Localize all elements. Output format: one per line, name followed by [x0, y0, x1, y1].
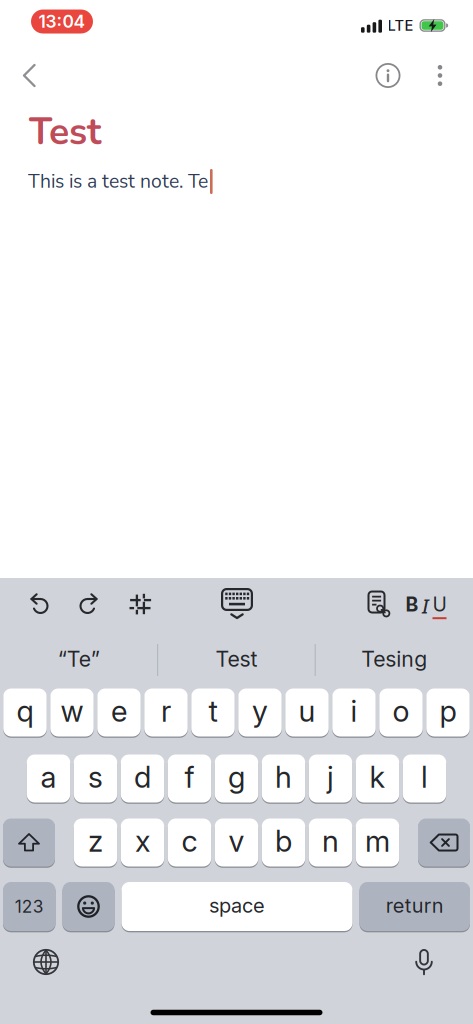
staticText: LTE — [387, 17, 413, 34]
staticText: U — [432, 593, 446, 616]
staticText: f — [184, 759, 194, 795]
button[interactable]: n — [309, 817, 352, 867]
button[interactable]: Tesing — [319, 637, 469, 681]
button[interactable]: Redo — [72, 587, 106, 621]
staticText: l — [421, 759, 428, 795]
staticText: d — [134, 759, 151, 795]
button[interactable]: p — [426, 687, 470, 737]
staticText: u — [298, 693, 315, 729]
staticText: h — [275, 759, 292, 795]
staticText: 123 — [15, 896, 44, 917]
button[interactable]: w — [50, 687, 94, 737]
staticText: o — [392, 693, 409, 729]
button[interactable]: s — [74, 753, 117, 803]
staticText: 13:04 — [38, 11, 85, 32]
button[interactable]: Recording indicator, 13:04 — [31, 9, 93, 33]
button[interactable]: i — [332, 687, 376, 737]
button[interactable]: d — [121, 753, 164, 803]
staticText: m — [365, 823, 390, 859]
staticText: b — [275, 823, 292, 859]
button[interactable]: f — [168, 753, 211, 803]
staticText: r — [161, 693, 171, 729]
button[interactable]: b — [262, 817, 305, 867]
button[interactable]: y — [238, 687, 282, 737]
button[interactable]: q — [3, 687, 47, 737]
staticText: This is a test note. Te — [28, 168, 208, 195]
staticText: Test — [215, 646, 257, 672]
button[interactable]: Info — [371, 58, 405, 92]
button[interactable]: Emoji — [62, 881, 114, 932]
staticText: z — [88, 823, 103, 859]
button[interactable]: Test — [161, 637, 311, 681]
button[interactable]: space — [121, 881, 352, 932]
button[interactable]: Text formatting — [405, 589, 446, 623]
button[interactable]: j — [309, 753, 352, 803]
staticText: n — [322, 823, 339, 859]
staticText: i — [350, 693, 357, 729]
staticText: “Te” — [58, 646, 100, 672]
staticText: x — [135, 823, 150, 859]
staticText: return — [386, 893, 444, 918]
staticText: space — [209, 893, 265, 918]
staticText: I — [422, 593, 429, 619]
staticText: a — [40, 759, 56, 795]
button[interactable]: r — [144, 687, 188, 737]
staticText: g — [228, 759, 245, 795]
staticText: t — [208, 693, 217, 729]
staticText: Tesing — [361, 646, 427, 672]
button[interactable]: Link note — [362, 587, 396, 621]
staticText: e — [111, 693, 127, 729]
staticText: v — [228, 823, 244, 859]
button[interactable]: Shift — [3, 817, 55, 867]
button[interactable]: Delete — [418, 817, 470, 867]
staticText: c — [181, 823, 197, 859]
staticText: y — [252, 693, 268, 729]
button[interactable]: g — [215, 753, 258, 803]
button[interactable]: u — [285, 687, 329, 737]
button[interactable]: More — [428, 58, 452, 92]
button[interactable]: l — [403, 753, 446, 803]
button[interactable]: a — [27, 753, 70, 803]
staticText: Test — [29, 106, 101, 157]
staticText: w — [60, 693, 83, 729]
button[interactable]: k — [356, 753, 399, 803]
button[interactable]: Back — [13, 58, 47, 92]
button[interactable]: x — [121, 817, 164, 867]
button[interactable]: “Te” — [4, 637, 154, 681]
button[interactable]: t — [191, 687, 235, 737]
button[interactable]: v — [215, 817, 258, 867]
button[interactable]: Undo — [22, 587, 56, 621]
button[interactable]: e — [97, 687, 141, 737]
button[interactable]: Dismiss keyboard — [217, 586, 257, 622]
button[interactable]: h — [262, 753, 305, 803]
staticText: k — [369, 759, 385, 795]
staticText: B — [405, 593, 418, 616]
button[interactable]: c — [168, 817, 211, 867]
staticText: s — [88, 759, 103, 795]
staticText: p — [439, 693, 456, 729]
button[interactable]: z — [74, 817, 117, 867]
button[interactable]: Dictate — [409, 944, 439, 980]
button[interactable]: m — [356, 817, 399, 867]
button[interactable]: Markdown tools — [123, 587, 157, 621]
button[interactable]: o — [379, 687, 423, 737]
button[interactable]: 123 — [3, 881, 55, 932]
staticText: j — [327, 759, 334, 795]
button[interactable]: return — [359, 881, 470, 932]
button[interactable]: Next keyboard — [28, 944, 64, 980]
staticText: q — [16, 693, 33, 729]
